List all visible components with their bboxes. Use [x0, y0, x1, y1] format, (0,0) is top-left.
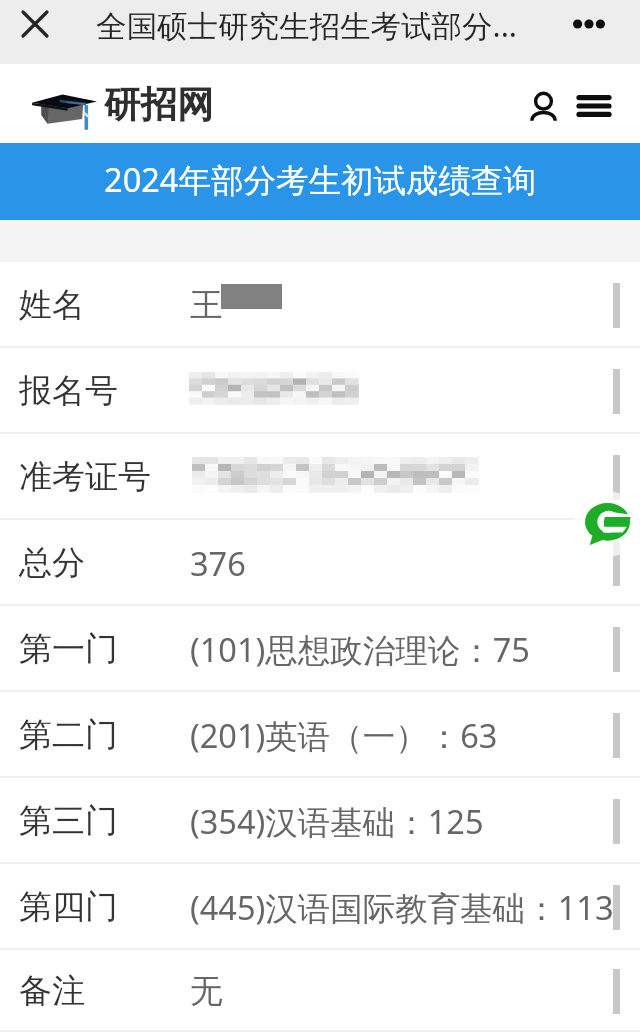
- staticText: 第三门: [19, 800, 118, 842]
- button[interactable]: 第三门: [0, 778, 640, 864]
- button[interactable]: 总分: [0, 520, 640, 606]
- staticText: 总分: [19, 542, 85, 584]
- staticText: 376: [190, 541, 246, 585]
- button[interactable]: Customer service chat: [574, 491, 640, 557]
- staticText: 第二门: [19, 714, 118, 756]
- button[interactable]: 第四门: [0, 864, 640, 950]
- staticText: (445)汉语国际教育基础：113: [190, 885, 614, 929]
- staticText: 姓名: [19, 284, 85, 326]
- staticText: 研招网: [104, 82, 214, 128]
- button[interactable]: Menu: [570, 82, 618, 130]
- button[interactable]: 姓名: [0, 262, 640, 348]
- staticText: 备注: [19, 970, 85, 1012]
- staticText: 王: [190, 285, 223, 326]
- button[interactable]: 报名号: [0, 348, 640, 434]
- button[interactable]: 第一门: [0, 606, 640, 692]
- staticText: (101)思想政治理论：75: [190, 627, 530, 671]
- button[interactable]: 备注: [0, 950, 640, 1032]
- staticText: 无: [190, 971, 223, 1012]
- staticText: 全国硕士研究生招生考试部分...: [96, 4, 518, 46]
- button[interactable]: Close: [10, 0, 60, 49]
- button[interactable]: Account: [519, 83, 567, 131]
- staticText: (354)汉语基础：125: [190, 799, 484, 843]
- staticText: 第四门: [19, 886, 118, 928]
- button[interactable]: 第二门: [0, 692, 640, 778]
- staticText: 第一门: [19, 628, 118, 670]
- staticText: 2024年部分考生初试成绩查询: [104, 157, 536, 201]
- button[interactable]: 准考证号: [0, 434, 640, 520]
- staticText: 准考证号: [19, 456, 151, 498]
- button[interactable]: More options: [563, 0, 615, 50]
- staticText: (201)英语（一）：63: [190, 713, 498, 757]
- staticText: 报名号: [19, 370, 118, 412]
